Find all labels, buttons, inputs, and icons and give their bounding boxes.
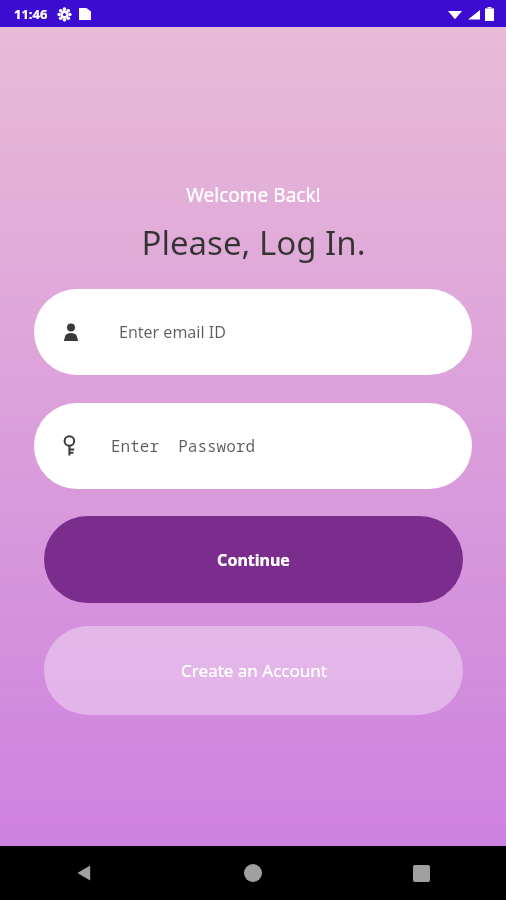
button[interactable]: Create an Account [44,626,463,715]
staticText: Welcome Back! [186,182,321,208]
staticText: Please, Log In. [141,220,366,265]
staticText: 11:46 [14,5,48,23]
staticText: Create an Account [181,659,327,682]
button[interactable]: Enter Password [34,403,472,489]
button[interactable]: Back [0,846,168,900]
button[interactable]: Home [168,846,337,900]
staticText: Enter email ID [119,321,226,343]
staticText: Enter Password [111,435,256,457]
staticText: Continue [217,549,290,571]
button[interactable]: Enter email ID [34,289,472,375]
button[interactable]: Recent apps [337,846,506,900]
button[interactable]: Continue [44,516,463,603]
